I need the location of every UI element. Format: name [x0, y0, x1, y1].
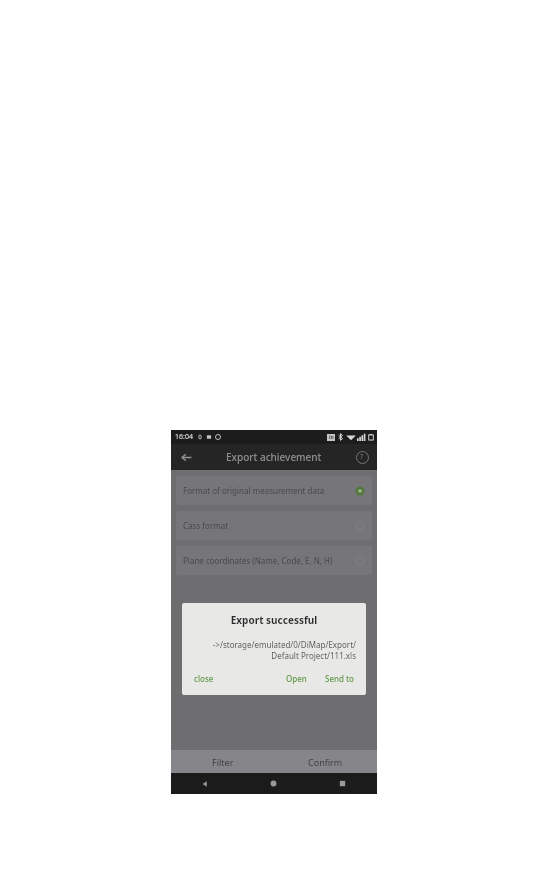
staticText: ->/storage/emulated/0/DiMap/Export/Defau… — [192, 639, 356, 661]
staticText: Send to — [325, 673, 354, 684]
button[interactable]: Open — [284, 671, 309, 686]
button[interactable]: Cass format — [176, 511, 372, 540]
button[interactable]: close — [192, 671, 216, 686]
button[interactable]: Confirm — [274, 750, 377, 773]
button[interactable]: Home — [239, 773, 308, 794]
button[interactable]: Recent apps — [308, 773, 377, 794]
staticText: Format of original measurement data — [183, 485, 355, 496]
staticText: 16:04 — [175, 432, 193, 442]
button[interactable]: Back — [171, 773, 239, 794]
button[interactable]: Plane coordinates (Name, Code, E, N, H) — [176, 546, 372, 575]
staticText: Filter — [212, 756, 234, 768]
staticText: Confirm — [308, 756, 343, 768]
staticText: Export successful — [192, 613, 356, 627]
button[interactable]: Filter — [171, 750, 274, 773]
staticText: close — [194, 673, 214, 684]
staticText: in — [329, 434, 334, 441]
staticText: Export achievement — [226, 450, 322, 464]
button[interactable]: Send to — [323, 671, 356, 686]
staticText: Plane coordinates (Name, Code, E, N, H) — [183, 555, 355, 566]
button[interactable]: Back — [175, 446, 197, 468]
staticText: Open — [286, 673, 307, 684]
button[interactable]: Help — [352, 447, 372, 467]
staticText: Cass format — [183, 520, 355, 531]
staticText: ? — [360, 452, 364, 462]
button[interactable]: Format of original measurement data — [176, 476, 372, 505]
